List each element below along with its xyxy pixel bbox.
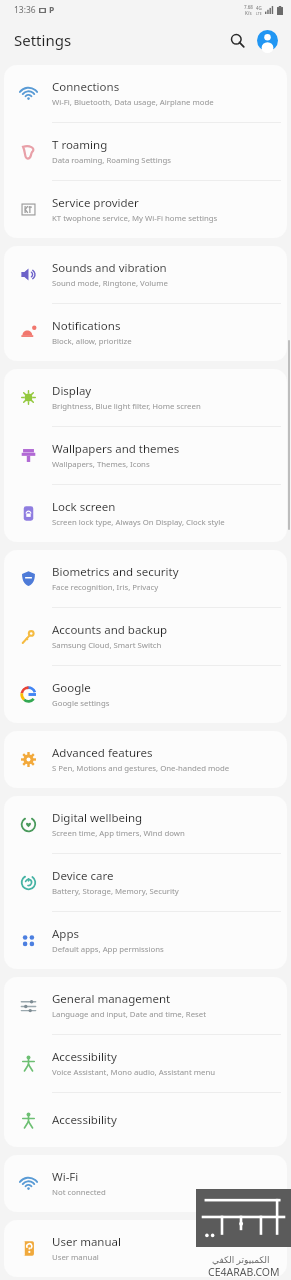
button[interactable]: Accessibility [4, 1093, 287, 1147]
button[interactable]: Connections [4, 65, 287, 122]
staticText: LTE [256, 11, 262, 16]
button[interactable]: Sounds and vibration [4, 246, 287, 303]
staticText: Default apps, App permissions [52, 944, 164, 955]
button[interactable]: Biometrics and security [4, 550, 287, 607]
staticText: Wallpapers, Themes, Icons [52, 459, 150, 470]
staticText: T roaming [52, 137, 108, 153]
staticText: 13:36 [14, 4, 36, 16]
staticText: 7.68 [244, 4, 253, 10]
staticText: Device care [52, 868, 114, 884]
staticText: Face recognition, Iris, Privacy [52, 582, 159, 593]
button[interactable]: Notifications [4, 304, 287, 361]
button[interactable]: Wallpapers and themes [4, 427, 287, 484]
staticText: Voice Assistant, Mono audio, Assistant m… [52, 1067, 216, 1078]
staticText: Wallpapers and themes [52, 441, 180, 457]
staticText: الكمبيوتر الكفي [212, 1253, 270, 1265]
staticText: KT twophone service, My Wi-Fi home setti… [52, 213, 218, 224]
staticText: K/s [245, 10, 252, 16]
button[interactable]: User manual [4, 1220, 287, 1277]
staticText: Advanced features [52, 745, 153, 761]
staticText: Sound mode, Ringtone, Volume [52, 278, 168, 289]
button[interactable]: General management [4, 977, 287, 1034]
button[interactable]: Wi-Fi [4, 1155, 287, 1212]
staticText: Google [52, 680, 91, 696]
button[interactable]: Lock screen [4, 485, 287, 542]
staticText: P [49, 4, 55, 16]
button[interactable]: Accounts and backup [4, 608, 287, 665]
staticText: Brightness, Blue light filter, Home scre… [52, 401, 201, 412]
staticText: 4G [256, 5, 262, 11]
button[interactable]: T roaming [4, 123, 287, 180]
staticText: Accessibility [52, 1049, 117, 1065]
button[interactable]: Advanced features [4, 731, 287, 788]
staticText: Wi-Fi, Bluetooth, Data usage, Airplane m… [52, 97, 214, 108]
staticText: Apps [52, 926, 80, 942]
staticText: Biometrics and security [52, 564, 179, 580]
staticText: Samsung Cloud, Smart Switch [52, 640, 162, 651]
button[interactable]: Digital wellbeing [4, 796, 287, 853]
staticText: CE4ARAB.COM [208, 1265, 280, 1279]
staticText: Display [52, 383, 92, 399]
staticText: User manual [52, 1234, 121, 1250]
staticText: Block, allow, prioritize [52, 336, 132, 347]
button[interactable]: Device care [4, 854, 287, 911]
staticText: Battery, Storage, Memory, Security [52, 886, 179, 897]
staticText: Data roaming, Roaming Settings [52, 155, 172, 166]
staticText: Screen lock type, Always On Display, Clo… [52, 517, 225, 528]
staticText: Service provider [52, 195, 139, 211]
button[interactable]: Search [223, 26, 251, 54]
button[interactable]: Account [253, 26, 281, 54]
button[interactable]: Display [4, 369, 287, 426]
staticText: Google settings [52, 698, 110, 709]
button[interactable]: Apps [4, 912, 287, 969]
staticText: Digital wellbeing [52, 810, 143, 826]
button[interactable]: Accessibility [4, 1035, 287, 1092]
staticText: General management [52, 991, 171, 1007]
staticText: Connections [52, 79, 120, 95]
staticText: Wi-Fi [52, 1169, 79, 1185]
staticText: Screen time, App timers, Wind down [52, 828, 185, 839]
staticText: Accessibility [52, 1112, 117, 1128]
staticText: Language and input, Date and time, Reset [52, 1009, 207, 1020]
staticText: Sounds and vibration [52, 260, 167, 276]
button[interactable]: Service provider [4, 181, 287, 238]
staticText: Notifications [52, 318, 121, 334]
staticText: Settings [14, 30, 72, 50]
staticText: Not connected [52, 1187, 106, 1198]
staticText: S Pen, Motions and gestures, One-handed … [52, 763, 230, 774]
staticText: Accounts and backup [52, 622, 168, 638]
staticText: User manual [52, 1252, 99, 1263]
staticText: Lock screen [52, 499, 116, 515]
button[interactable]: Google [4, 666, 287, 723]
